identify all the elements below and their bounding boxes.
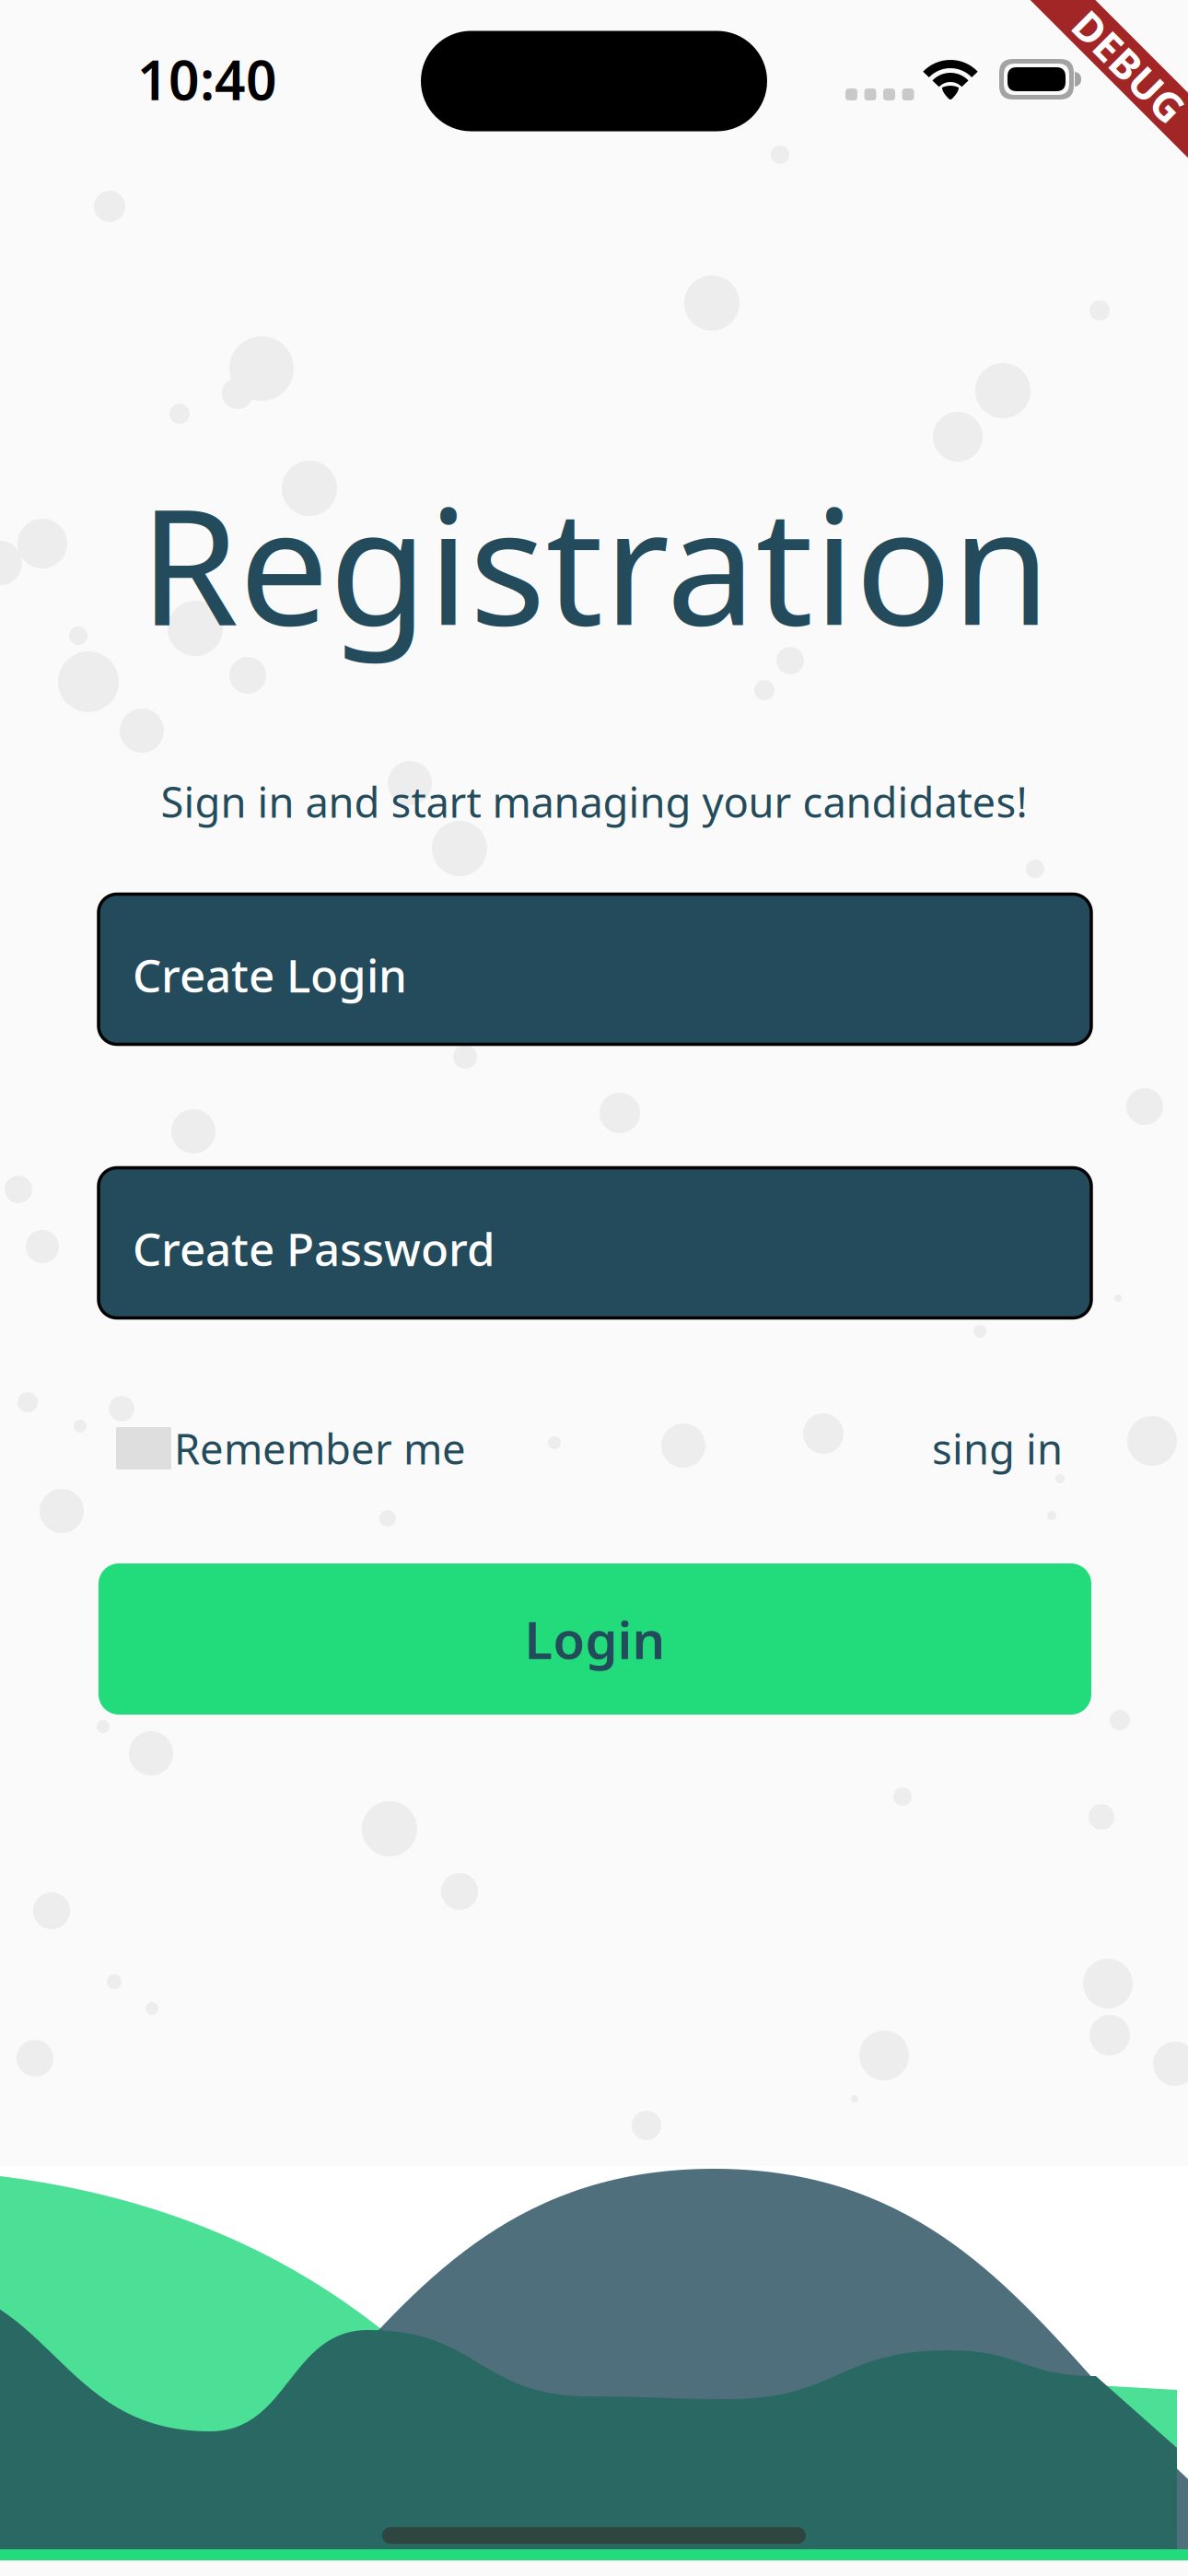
staticText: DEBUG — [1060, 39, 1188, 93]
staticText: 10:40 — [137, 43, 277, 115]
button[interactable]: Remember me — [99, 1421, 466, 1476]
button[interactable]: Create Password — [99, 1168, 1091, 1318]
button[interactable]: Login — [99, 1563, 1091, 1715]
staticText: Remember me — [174, 1421, 466, 1476]
staticText: sing in — [932, 1421, 1063, 1476]
staticText: Login — [524, 1605, 665, 1673]
staticText: Create Password — [133, 1218, 495, 1279]
button[interactable]: sing in — [932, 1421, 1091, 1476]
staticText: Sign in and start managing your candidat… — [161, 774, 1027, 829]
button[interactable]: Create Login — [99, 894, 1091, 1044]
staticText: Registration — [140, 457, 1050, 669]
staticText: Create Login — [133, 945, 407, 1005]
